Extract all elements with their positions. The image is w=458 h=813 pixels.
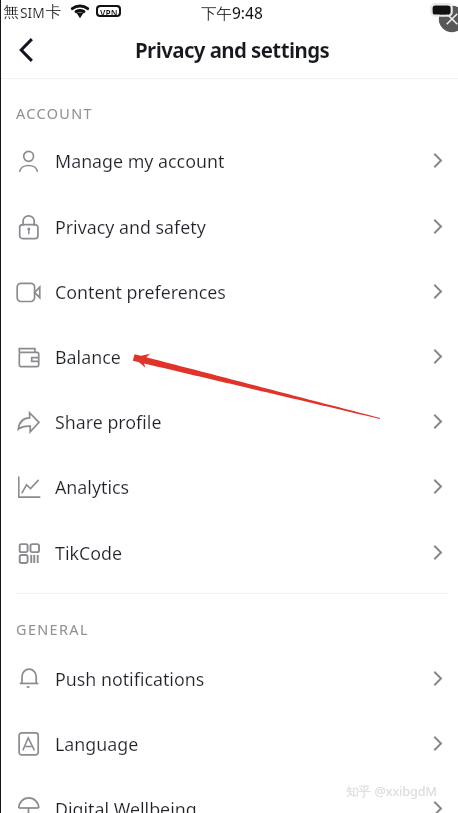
staticText: Digital Wellbeing xyxy=(55,797,197,813)
button[interactable]: Content preferences xyxy=(0,259,458,324)
button[interactable]: Push notifications xyxy=(0,646,458,711)
staticText: Content preferences xyxy=(55,280,226,304)
staticText: Manage my account xyxy=(55,149,225,173)
button[interactable]: Analytics xyxy=(0,454,458,519)
staticText: 卡 xyxy=(46,2,62,22)
staticText: ACCOUNT xyxy=(16,104,94,124)
staticText: SIM xyxy=(20,3,45,22)
staticText: VPN xyxy=(100,7,118,15)
staticText: GENERAL xyxy=(16,620,89,640)
button[interactable]: Balance xyxy=(0,324,458,389)
button[interactable]: Share profile xyxy=(0,389,458,454)
staticText: Push notifications xyxy=(55,667,205,691)
button[interactable]: Manage my account xyxy=(0,128,458,193)
button[interactable]: TikCode xyxy=(0,520,458,585)
staticText: Language xyxy=(55,732,139,756)
button[interactable]: Back xyxy=(3,26,49,74)
staticText: 知乎 @xxibgdM xyxy=(346,783,438,800)
button[interactable]: Privacy and safety xyxy=(0,194,458,259)
staticText: 無 xyxy=(3,2,19,22)
staticText: Share profile xyxy=(55,410,162,434)
button[interactable]: Digital Wellbeing xyxy=(0,776,458,813)
staticText: Balance xyxy=(55,345,121,369)
staticText: 下午9:48 xyxy=(201,2,263,23)
staticText: Analytics xyxy=(55,475,130,499)
button[interactable]: Close xyxy=(439,6,458,32)
staticText: TikCode xyxy=(55,541,122,565)
button[interactable]: Language xyxy=(0,711,458,776)
staticText: Privacy and safety xyxy=(55,215,206,239)
staticText: Privacy and settings xyxy=(135,36,330,64)
